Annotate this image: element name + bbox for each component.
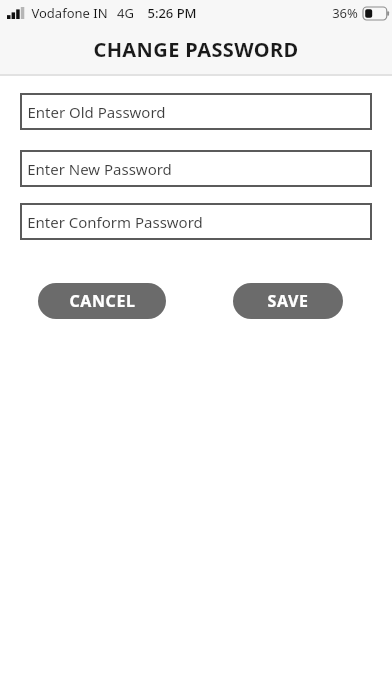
staticText: Enter New Password xyxy=(27,159,172,179)
staticText: Enter Conform Password xyxy=(27,212,203,232)
staticText: Vodafone IN xyxy=(31,4,108,22)
button[interactable]: SAVE xyxy=(233,283,343,319)
staticText: 4G xyxy=(117,4,134,22)
button[interactable]: Enter New Password xyxy=(20,150,372,187)
staticText: 36% xyxy=(332,4,358,22)
staticText: Enter Old Password xyxy=(27,102,166,122)
staticText: CHANGE PASSWORD xyxy=(93,36,299,63)
button[interactable]: CANCEL xyxy=(38,283,166,319)
staticText: SAVE xyxy=(267,290,309,312)
button[interactable]: Enter Old Password xyxy=(20,93,372,130)
button[interactable]: Enter Conform Password xyxy=(20,203,372,240)
staticText: 5:26 PM xyxy=(147,4,197,22)
staticText: CANCEL xyxy=(69,290,136,312)
